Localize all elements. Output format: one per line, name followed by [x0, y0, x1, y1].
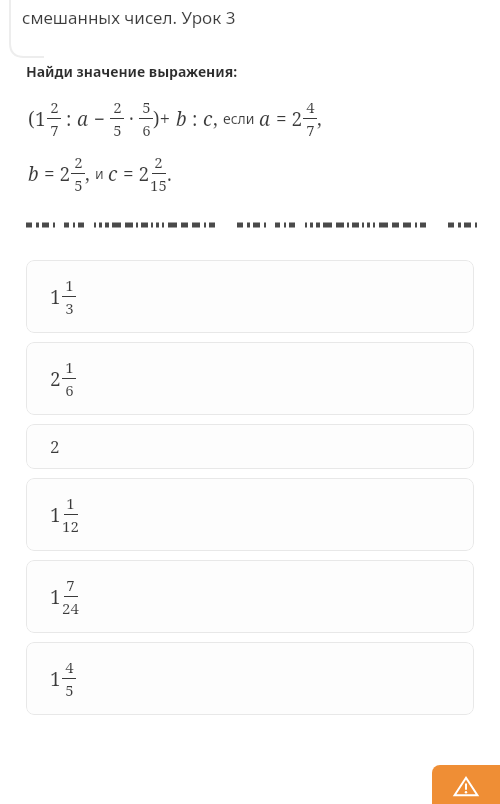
staticText: 7 [66, 575, 75, 595]
staticText: 2 [50, 366, 61, 392]
staticText: 1 [65, 275, 74, 295]
button[interactable]: 2 [26, 342, 474, 415]
staticText: c [108, 161, 118, 187]
staticText: 2 [113, 97, 122, 117]
staticText: смешанных чисел. Урок 3 [22, 6, 236, 29]
staticText: 5 [74, 175, 83, 195]
button[interactable]: 1 [26, 260, 474, 333]
staticText: , [317, 106, 322, 132]
staticText: − [89, 106, 110, 132]
staticText: 7 [306, 120, 315, 140]
staticText: 2 [74, 152, 83, 172]
button[interactable]: Сообщить об ошибке [432, 765, 500, 804]
staticText: 12 [62, 516, 79, 536]
staticText: b [176, 106, 187, 132]
staticText: )+ [153, 106, 176, 132]
button[interactable]: 1 [26, 478, 474, 551]
staticText: 2 [50, 97, 59, 117]
staticText: Найди значение выражения: [26, 62, 238, 81]
staticText: 4 [65, 657, 74, 677]
button[interactable]: 1 [26, 642, 474, 715]
staticText: 7 [50, 120, 59, 140]
staticText: 1 [50, 502, 61, 528]
staticText: : [187, 106, 203, 132]
staticText: 1 [66, 493, 75, 513]
staticText: и [95, 164, 108, 183]
staticText: 2 [154, 152, 163, 172]
staticText: , [85, 161, 95, 187]
staticText: 3 [65, 298, 74, 318]
staticText: = 2 [118, 161, 150, 187]
staticText: 5 [65, 680, 74, 700]
staticText: если [223, 109, 259, 128]
staticText: : [61, 106, 77, 132]
staticText: = 2 [271, 106, 303, 132]
staticText: · [124, 106, 139, 132]
staticText: 4 [306, 97, 315, 117]
staticText: 24 [62, 598, 79, 618]
staticText: 5 [142, 97, 151, 117]
staticText: 1 [50, 284, 61, 310]
staticText: 2 [50, 435, 60, 458]
staticText: b [28, 161, 39, 187]
staticText: a [259, 106, 271, 132]
staticText: 6 [142, 120, 151, 140]
staticText: 6 [65, 380, 74, 400]
staticText: . [167, 161, 172, 187]
staticText: 15 [150, 175, 167, 195]
staticText: c [203, 106, 213, 132]
staticText: = 2 [39, 161, 71, 187]
staticText: 1 [65, 357, 74, 377]
staticText: a [77, 106, 89, 132]
staticText: , [213, 106, 223, 132]
button[interactable]: 2 [26, 424, 474, 469]
staticText: 5 [113, 120, 122, 140]
staticText: 1 [50, 584, 61, 610]
staticText: 1 [50, 666, 61, 692]
staticText: 1 [35, 106, 46, 132]
button[interactable]: 1 [26, 560, 474, 633]
staticText: ( [28, 106, 35, 132]
